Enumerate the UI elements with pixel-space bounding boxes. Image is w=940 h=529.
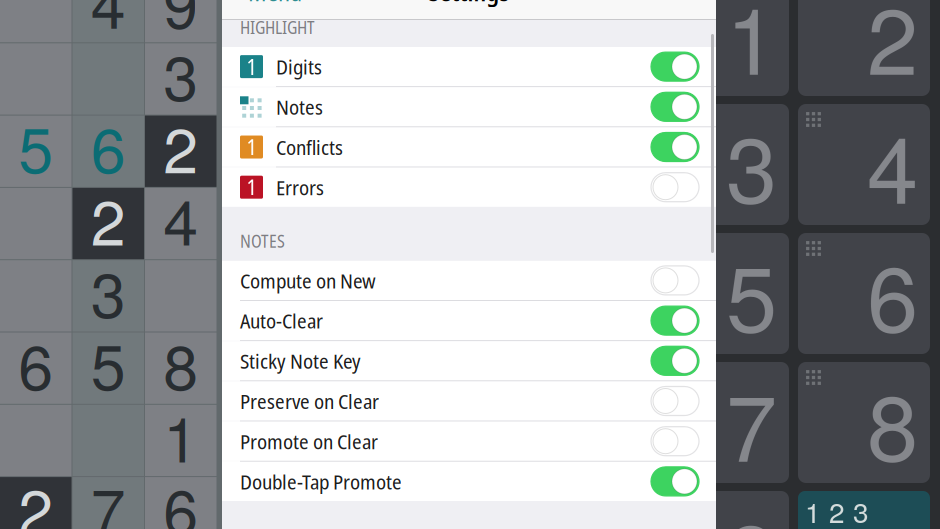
button[interactable]: Menu — [234, 0, 302, 5]
staticText: 8 — [867, 356, 918, 488]
staticText: 6 — [867, 227, 918, 359]
button[interactable]: Enter 9 — [657, 491, 789, 529]
button[interactable]: Notes mode — [798, 491, 930, 529]
staticText: 2 — [867, 0, 918, 101]
button[interactable]: Enter 2 — [798, 0, 930, 96]
button[interactable]: Enter 4 — [798, 104, 930, 225]
staticText: 2 — [18, 463, 53, 529]
staticText: NOTES — [240, 229, 285, 253]
staticText: 1 — [163, 391, 198, 480]
button[interactable]: Enter 7 — [657, 362, 789, 483]
button[interactable]: Auto-Clear — [222, 301, 716, 340]
button[interactable]: Compute on New — [222, 261, 716, 300]
staticText: 5 — [91, 318, 126, 408]
staticText: Auto-Clear — [240, 306, 323, 335]
button[interactable]: Enter 5 — [657, 233, 789, 354]
staticText: 3 — [726, 98, 777, 230]
staticText: Promote on Clear — [240, 427, 378, 455]
button[interactable]: 1 — [222, 127, 716, 167]
button[interactable]: Enter 8 — [798, 362, 930, 483]
button[interactable]: Preserve on Clear — [222, 381, 716, 421]
staticText: 1 — [246, 52, 256, 81]
staticText: Notes — [276, 93, 323, 121]
staticText: 1 — [246, 173, 256, 202]
staticText: 3 — [91, 246, 126, 336]
button[interactable]: 1 — [222, 47, 716, 86]
staticText: 6 — [18, 318, 53, 408]
button[interactable]: Double-Tap Promote — [222, 462, 716, 501]
staticText: Compute on New — [240, 266, 376, 294]
staticText: 5 — [726, 227, 777, 359]
button[interactable]: Promote on Clear — [222, 422, 716, 461]
button[interactable]: Notes — [222, 87, 716, 126]
staticText: HIGHLIGHT — [240, 15, 315, 39]
staticText: 2 — [163, 101, 198, 191]
staticText: 1 — [246, 132, 256, 162]
button[interactable]: Enter 3 — [657, 104, 789, 225]
staticText: Errors — [276, 173, 324, 201]
staticText: Double-Tap Promote — [240, 467, 402, 495]
staticText: 2 — [91, 174, 126, 263]
staticText: 8 — [163, 318, 198, 408]
staticText: 1 2 3 — [805, 491, 869, 529]
staticText: 9 — [726, 485, 777, 529]
staticText: 4 — [163, 174, 198, 263]
staticText: Conflicts — [276, 133, 343, 161]
staticText: 9 — [163, 0, 198, 46]
staticText: 3 — [163, 29, 198, 119]
button[interactable]: 1 — [222, 168, 716, 207]
staticText: 6 — [163, 463, 198, 529]
button[interactable]: Enter 1 — [657, 0, 789, 96]
staticText: 5 — [18, 101, 53, 191]
staticText: 1 — [726, 0, 777, 101]
staticText: Settings — [428, 0, 509, 8]
staticText: 4 — [867, 98, 918, 230]
staticText: Menu — [248, 0, 302, 8]
staticText: Sticky Note Key — [240, 347, 361, 375]
staticText: Preserve on Clear — [240, 387, 379, 415]
staticText: Digits — [276, 52, 322, 81]
staticText: 4 — [91, 0, 126, 46]
staticText: 7 — [726, 356, 777, 488]
staticText: 6 — [91, 101, 126, 191]
staticText: 7 — [91, 463, 126, 529]
button[interactable]: Sticky Note Key — [222, 341, 716, 380]
button[interactable]: Enter 6 — [798, 233, 930, 354]
